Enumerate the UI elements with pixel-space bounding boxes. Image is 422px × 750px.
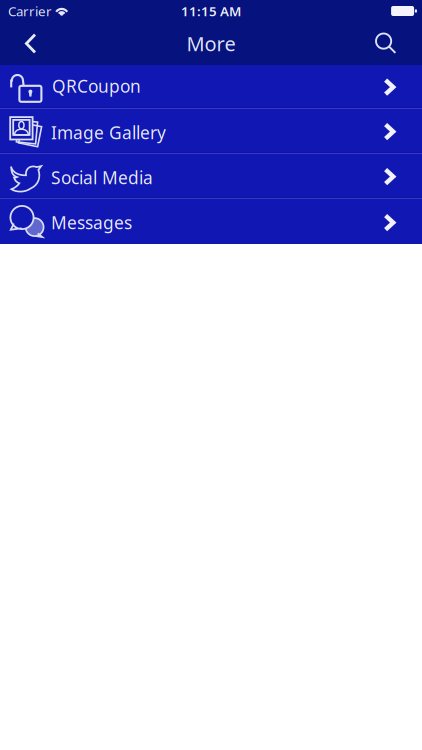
staticText: Image Gallery	[51, 121, 166, 144]
staticText: QRCoupon	[52, 74, 141, 97]
button[interactable]: Image Gallery	[0, 109, 422, 154]
staticText: More	[186, 30, 235, 57]
button[interactable]: QRCoupon	[0, 65, 422, 109]
button[interactable]: Social Media	[0, 154, 422, 199]
staticText: 11:15 AM	[181, 2, 241, 20]
button[interactable]: Messages	[0, 199, 422, 244]
button[interactable]: Search	[364, 22, 422, 65]
staticText: Carrier	[8, 2, 52, 20]
button[interactable]: Back	[0, 22, 55, 65]
staticText: Messages	[51, 211, 132, 234]
staticText: Social Media	[51, 166, 153, 189]
